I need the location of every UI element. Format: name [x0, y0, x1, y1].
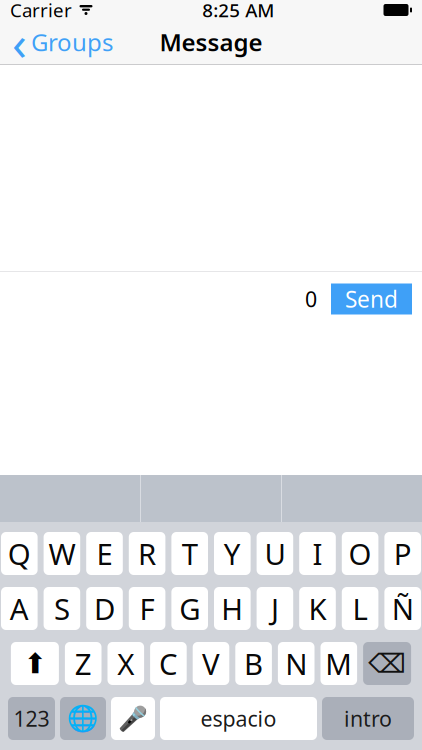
staticText: M	[325, 644, 352, 683]
button[interactable]: S	[44, 587, 80, 630]
staticText: F	[140, 589, 155, 628]
button[interactable]: K	[299, 587, 336, 630]
staticText: Z	[75, 644, 92, 683]
button[interactable]: Y	[214, 532, 251, 575]
staticText: U	[264, 534, 285, 573]
button[interactable]: D	[86, 587, 123, 630]
button[interactable]: X	[107, 642, 144, 685]
staticText: ‹	[12, 10, 27, 74]
button[interactable]: R	[129, 532, 165, 575]
button[interactable]: P	[384, 532, 421, 575]
staticText: ⬆	[23, 648, 46, 679]
staticText: A	[10, 589, 29, 628]
staticText: Carrier	[10, 0, 72, 22]
staticText: D	[94, 589, 115, 628]
staticText: W	[48, 534, 75, 573]
button[interactable]: T	[171, 532, 208, 575]
staticText: B	[244, 644, 263, 683]
staticText: Message	[159, 26, 262, 58]
staticText: C	[159, 644, 178, 683]
button[interactable]: U	[257, 532, 293, 575]
button[interactable]: ‹	[0, 20, 123, 64]
staticText: X	[117, 644, 134, 683]
button[interactable]: 123	[8, 697, 55, 740]
staticText: E	[96, 534, 112, 573]
button[interactable]: Ñ	[384, 587, 421, 630]
button[interactable]: Z	[65, 642, 101, 685]
staticText: N	[285, 644, 307, 683]
staticText: V	[202, 644, 220, 683]
button[interactable]: B	[235, 642, 272, 685]
button[interactable]: O	[342, 532, 378, 575]
staticText: 🌐	[67, 704, 99, 733]
button[interactable]: C	[150, 642, 187, 685]
staticText: J	[271, 589, 279, 628]
button[interactable]: Delete	[363, 642, 411, 685]
staticText: G	[179, 589, 200, 628]
staticText: Groups	[31, 26, 113, 58]
staticText: Q	[8, 534, 31, 573]
staticText: ⌫	[368, 648, 406, 679]
staticText: 8:25 AM	[202, 0, 274, 22]
staticText: Send	[345, 284, 398, 314]
button[interactable]: W	[44, 532, 80, 575]
staticText: I	[312, 534, 322, 573]
staticText: T	[182, 534, 198, 573]
staticText: 123	[13, 704, 49, 733]
button[interactable]: Q	[1, 532, 38, 575]
staticText: L	[353, 589, 368, 628]
button[interactable]: M	[320, 642, 357, 685]
button[interactable]: E	[86, 532, 123, 575]
staticText: 🎤	[118, 705, 148, 732]
staticText: R	[138, 534, 156, 573]
button[interactable]: H	[214, 587, 251, 630]
staticText: P	[394, 534, 412, 573]
staticText: S	[54, 589, 70, 628]
button[interactable]: J	[257, 587, 293, 630]
button[interactable]: N	[278, 642, 314, 685]
staticText: Y	[224, 534, 241, 573]
button[interactable]: V	[193, 642, 229, 685]
button[interactable]: Dictation	[111, 697, 155, 740]
button[interactable]: G	[171, 587, 208, 630]
staticText: H	[221, 589, 243, 628]
staticText: Ñ	[392, 589, 414, 628]
button[interactable]: Shift	[11, 642, 59, 685]
button[interactable]: espacio	[160, 697, 317, 740]
button[interactable]: A	[1, 587, 38, 630]
button[interactable]: intro	[322, 697, 414, 740]
staticText: espacio	[200, 704, 276, 733]
button[interactable]: L	[342, 587, 378, 630]
button[interactable]: F	[129, 587, 165, 630]
button[interactable]: Next keyboard	[60, 697, 106, 740]
button[interactable]: I	[299, 532, 336, 575]
staticText: intro	[344, 704, 392, 733]
button[interactable]: Send	[331, 283, 412, 314]
staticText: K	[308, 589, 326, 628]
staticText: 0	[305, 285, 317, 313]
staticText: O	[349, 534, 372, 573]
